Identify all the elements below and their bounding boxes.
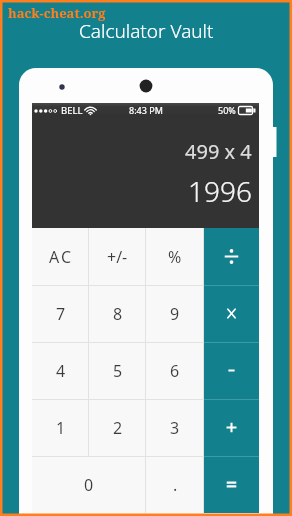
staticText: 9 (170, 303, 180, 325)
button[interactable]: 5 (89, 342, 146, 399)
staticText: 6 (170, 360, 180, 382)
staticText: 4 (56, 360, 66, 382)
button[interactable]: Subtract (204, 342, 259, 399)
button[interactable]: +/- (89, 228, 146, 285)
staticText: 8 (113, 303, 123, 325)
button[interactable]: 8 (89, 285, 146, 342)
staticText: 0 (84, 474, 94, 496)
button[interactable]: Add (204, 399, 259, 456)
staticText: % (168, 246, 182, 268)
staticText: 50% (218, 104, 236, 116)
staticText: AC (49, 246, 74, 268)
staticText: 7 (56, 303, 66, 325)
staticText: 1996 (188, 172, 252, 210)
staticText: . (173, 474, 178, 496)
button[interactable]: % (146, 228, 204, 285)
button[interactable]: 4 (32, 342, 89, 399)
button[interactable]: 6 (146, 342, 204, 399)
staticText: 2 (113, 417, 123, 439)
button[interactable]: 0 (32, 456, 146, 513)
button[interactable]: 7 (32, 285, 89, 342)
button[interactable]: 9 (146, 285, 204, 342)
staticText: Calculator Vault (79, 18, 214, 44)
staticText: +/- (107, 246, 128, 268)
button[interactable]: . (146, 456, 204, 513)
button[interactable]: Equals (204, 456, 259, 513)
button[interactable]: Divide (204, 228, 259, 285)
staticText: hack-cheat.org (8, 4, 106, 22)
staticText: 1 (56, 417, 66, 439)
staticText: BELL (61, 104, 83, 117)
button[interactable]: AC (32, 228, 89, 285)
staticText: 5 (113, 360, 123, 382)
staticText: 499 x 4 (185, 138, 252, 165)
button[interactable]: Multiply (204, 285, 259, 342)
button[interactable]: 3 (146, 399, 204, 456)
staticText: 8:43 PM (129, 104, 163, 116)
staticText: 3 (170, 417, 180, 439)
button[interactable]: 1 (32, 399, 89, 456)
button[interactable]: 2 (89, 399, 146, 456)
